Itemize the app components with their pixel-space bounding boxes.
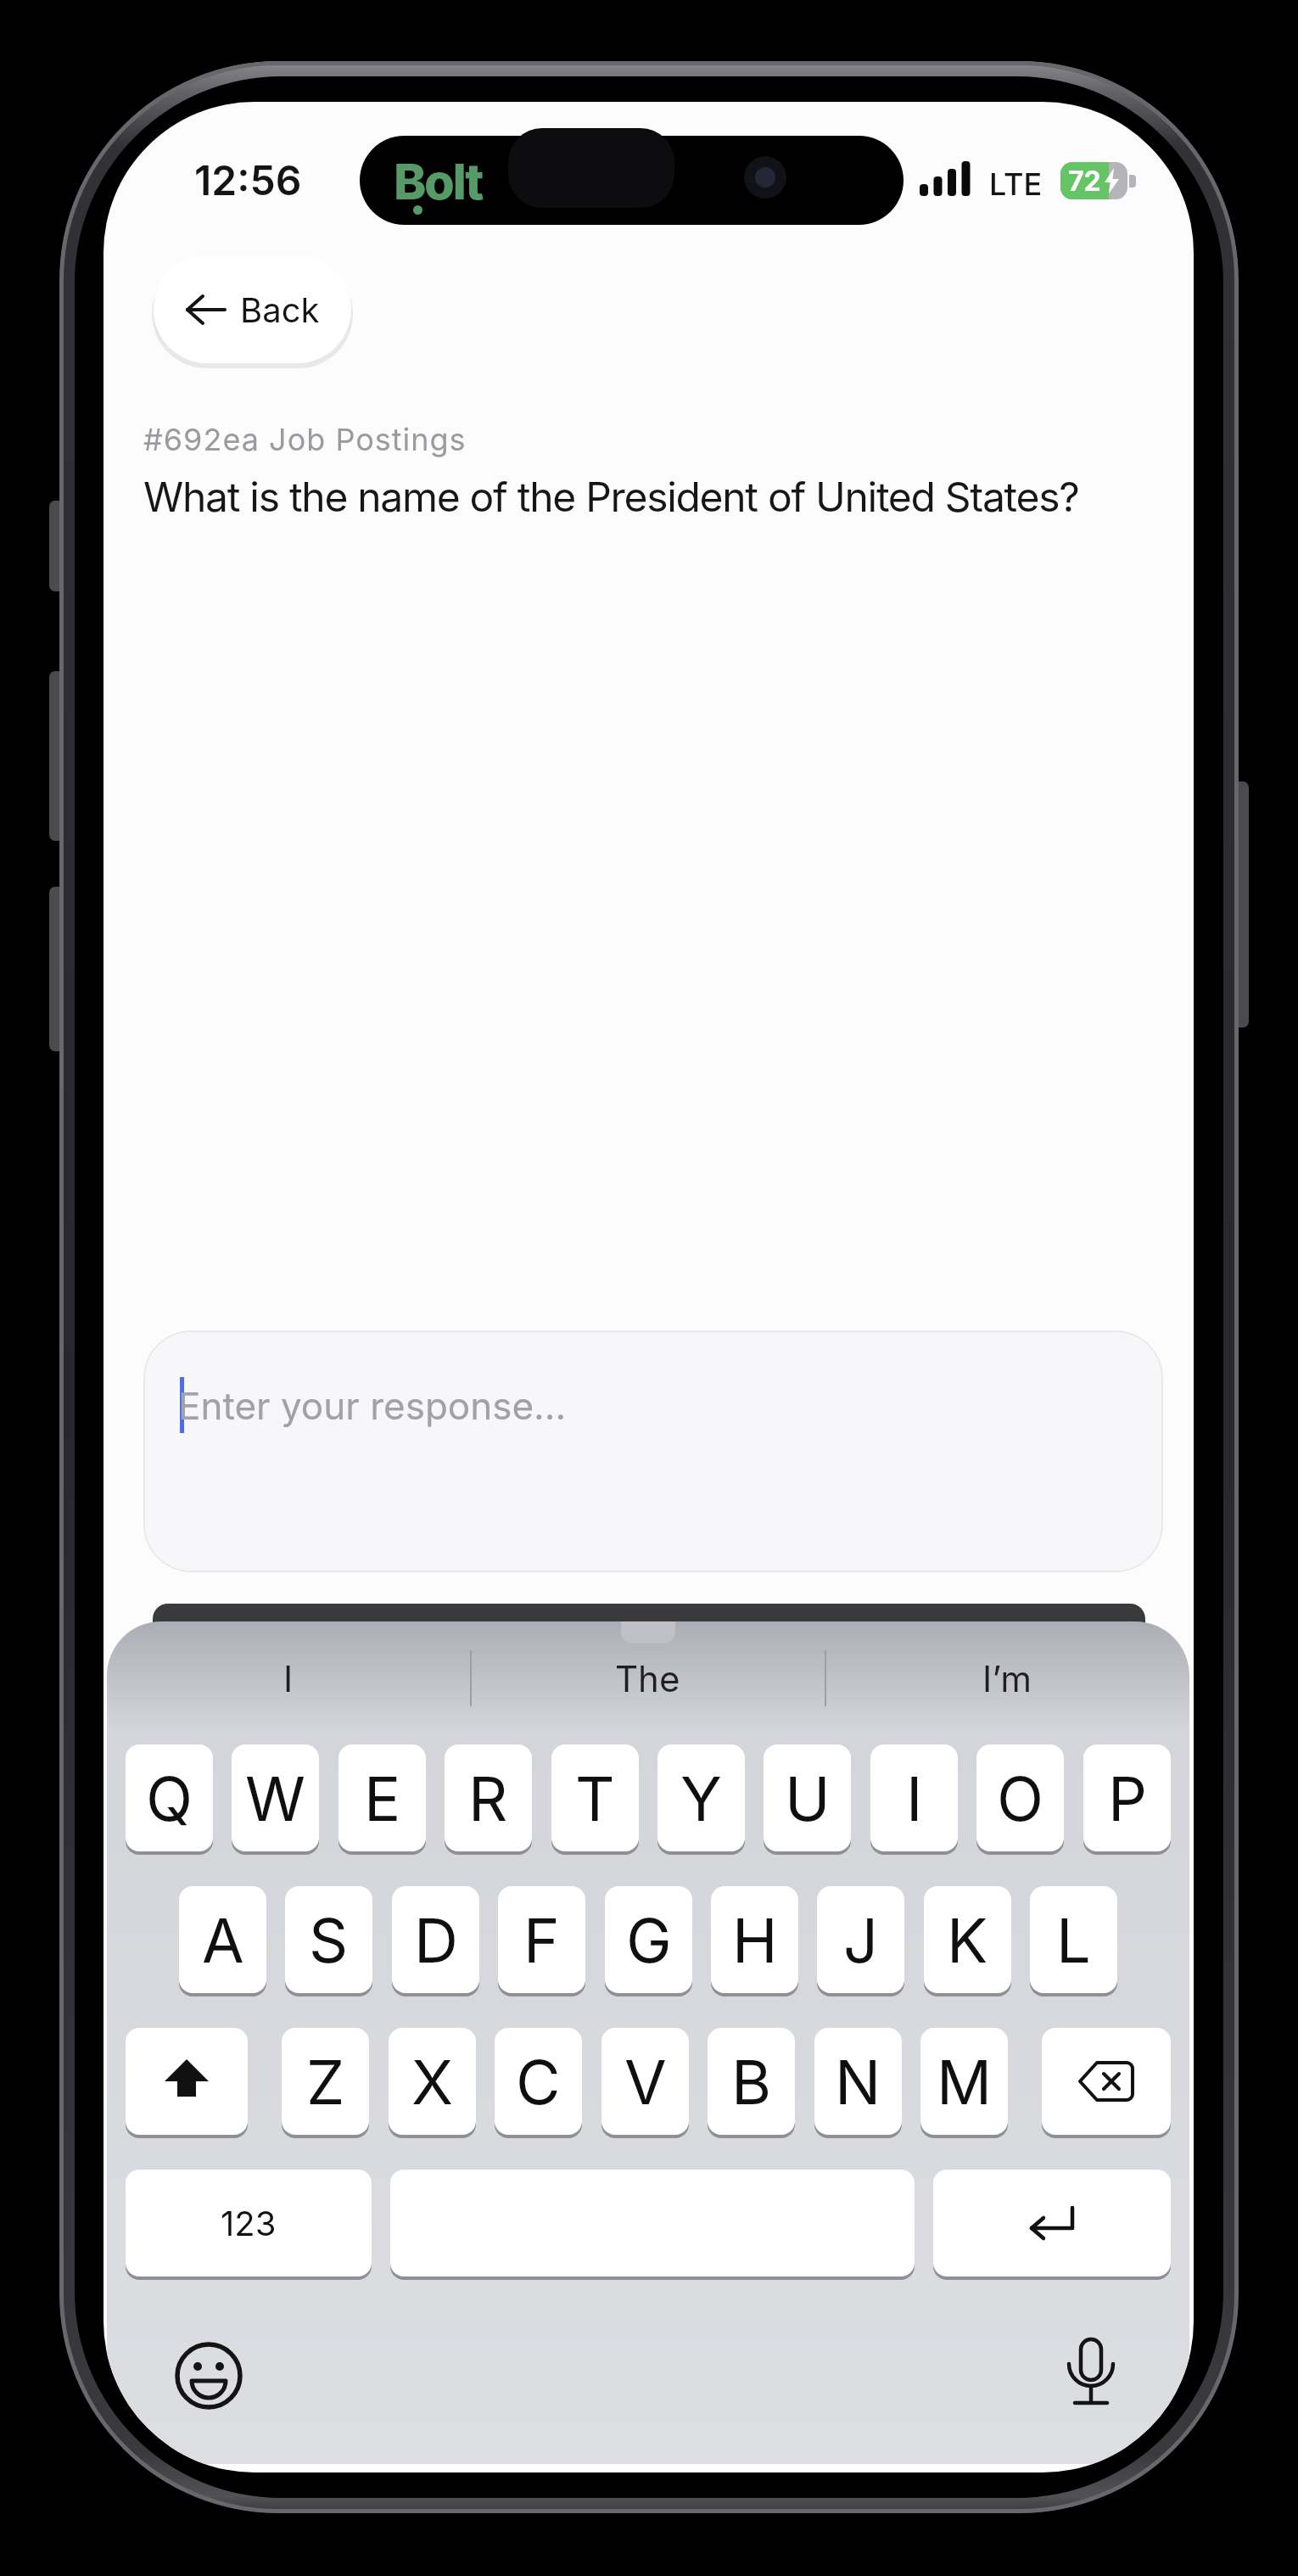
staticText: L bbox=[1056, 1903, 1091, 1977]
staticText: H bbox=[732, 1903, 778, 1977]
staticText: #692ea Job Postings bbox=[143, 421, 467, 458]
staticText: M bbox=[937, 2045, 993, 2119]
staticText: 123 bbox=[221, 2203, 277, 2243]
button[interactable]: E bbox=[338, 1744, 426, 1851]
button[interactable]: D bbox=[392, 1886, 479, 1993]
staticText: K bbox=[947, 1903, 988, 1977]
staticText: E bbox=[364, 1761, 401, 1835]
button[interactable]: I bbox=[870, 1744, 958, 1851]
staticText: 72 bbox=[1068, 165, 1101, 198]
button[interactable]: Q bbox=[126, 1744, 213, 1851]
button[interactable]: H bbox=[711, 1886, 798, 1993]
staticText: D bbox=[414, 1903, 458, 1977]
button[interactable]: U bbox=[764, 1744, 851, 1851]
staticText: O bbox=[997, 1761, 1044, 1835]
button[interactable]: K bbox=[924, 1886, 1011, 1993]
staticText: 12:56 bbox=[194, 155, 302, 204]
staticText: LTE bbox=[989, 165, 1043, 203]
button[interactable]: N bbox=[814, 2028, 902, 2135]
button[interactable]: S bbox=[285, 1886, 372, 1993]
staticText: C bbox=[516, 2045, 561, 2119]
button[interactable]: L bbox=[1030, 1886, 1117, 1993]
staticText: Enter your response... bbox=[178, 1383, 567, 1428]
button[interactable]: T bbox=[551, 1744, 639, 1851]
button[interactable]: O bbox=[976, 1744, 1064, 1851]
button[interactable]: M bbox=[920, 2028, 1008, 2135]
staticText: J bbox=[843, 1903, 879, 1977]
button[interactable]: W bbox=[232, 1744, 319, 1851]
button[interactable] bbox=[126, 2028, 248, 2135]
staticText: V bbox=[624, 2045, 667, 2119]
button[interactable]: V bbox=[601, 2028, 689, 2135]
button[interactable] bbox=[390, 2170, 915, 2276]
staticText: A bbox=[202, 1903, 244, 1977]
button[interactable] bbox=[1053, 2334, 1129, 2415]
button[interactable]: Z bbox=[282, 2028, 369, 2135]
staticText: I bbox=[906, 1761, 923, 1835]
staticText: Y bbox=[680, 1761, 722, 1835]
staticText: S bbox=[309, 1903, 349, 1977]
button[interactable] bbox=[1042, 2028, 1171, 2135]
staticText: Z bbox=[306, 2045, 345, 2119]
staticText: I bbox=[283, 1657, 294, 1700]
staticText: Back bbox=[240, 289, 320, 330]
staticText: N bbox=[835, 2045, 881, 2119]
button[interactable]: I bbox=[107, 1647, 470, 1710]
button[interactable]: P bbox=[1083, 1744, 1171, 1851]
button[interactable]: X bbox=[389, 2028, 476, 2135]
button[interactable]: A bbox=[179, 1886, 266, 1993]
staticText: Bolt bbox=[394, 152, 482, 211]
button[interactable]: Y bbox=[657, 1744, 745, 1851]
button[interactable]: G bbox=[605, 1886, 692, 1993]
button[interactable] bbox=[171, 2338, 247, 2414]
staticText: B bbox=[731, 2045, 772, 2119]
button[interactable]: I’m bbox=[825, 1647, 1189, 1710]
staticText: F bbox=[523, 1903, 560, 1977]
button[interactable]: Enter your response... bbox=[143, 1330, 1163, 1572]
staticText: I’m bbox=[982, 1657, 1032, 1700]
staticText: X bbox=[411, 2045, 454, 2119]
button[interactable]: B bbox=[708, 2028, 795, 2135]
staticText: The bbox=[615, 1657, 680, 1700]
staticText: P bbox=[1108, 1761, 1147, 1835]
button[interactable]: J bbox=[817, 1886, 904, 1993]
staticText: W bbox=[245, 1761, 305, 1835]
staticText: U bbox=[785, 1761, 831, 1835]
button[interactable]: 123 bbox=[126, 2170, 372, 2276]
button[interactable]: The bbox=[470, 1647, 825, 1710]
staticText: T bbox=[575, 1761, 615, 1835]
button[interactable]: F bbox=[498, 1886, 585, 1993]
button[interactable] bbox=[933, 2170, 1171, 2276]
staticText: Q bbox=[146, 1761, 193, 1835]
button[interactable]: C bbox=[495, 2028, 582, 2135]
button[interactable]: Back bbox=[154, 255, 351, 363]
button[interactable]: R bbox=[445, 1744, 532, 1851]
staticText: What is the name of the President of Uni… bbox=[143, 472, 1079, 521]
staticText: G bbox=[626, 1903, 672, 1977]
staticText: R bbox=[468, 1761, 508, 1835]
